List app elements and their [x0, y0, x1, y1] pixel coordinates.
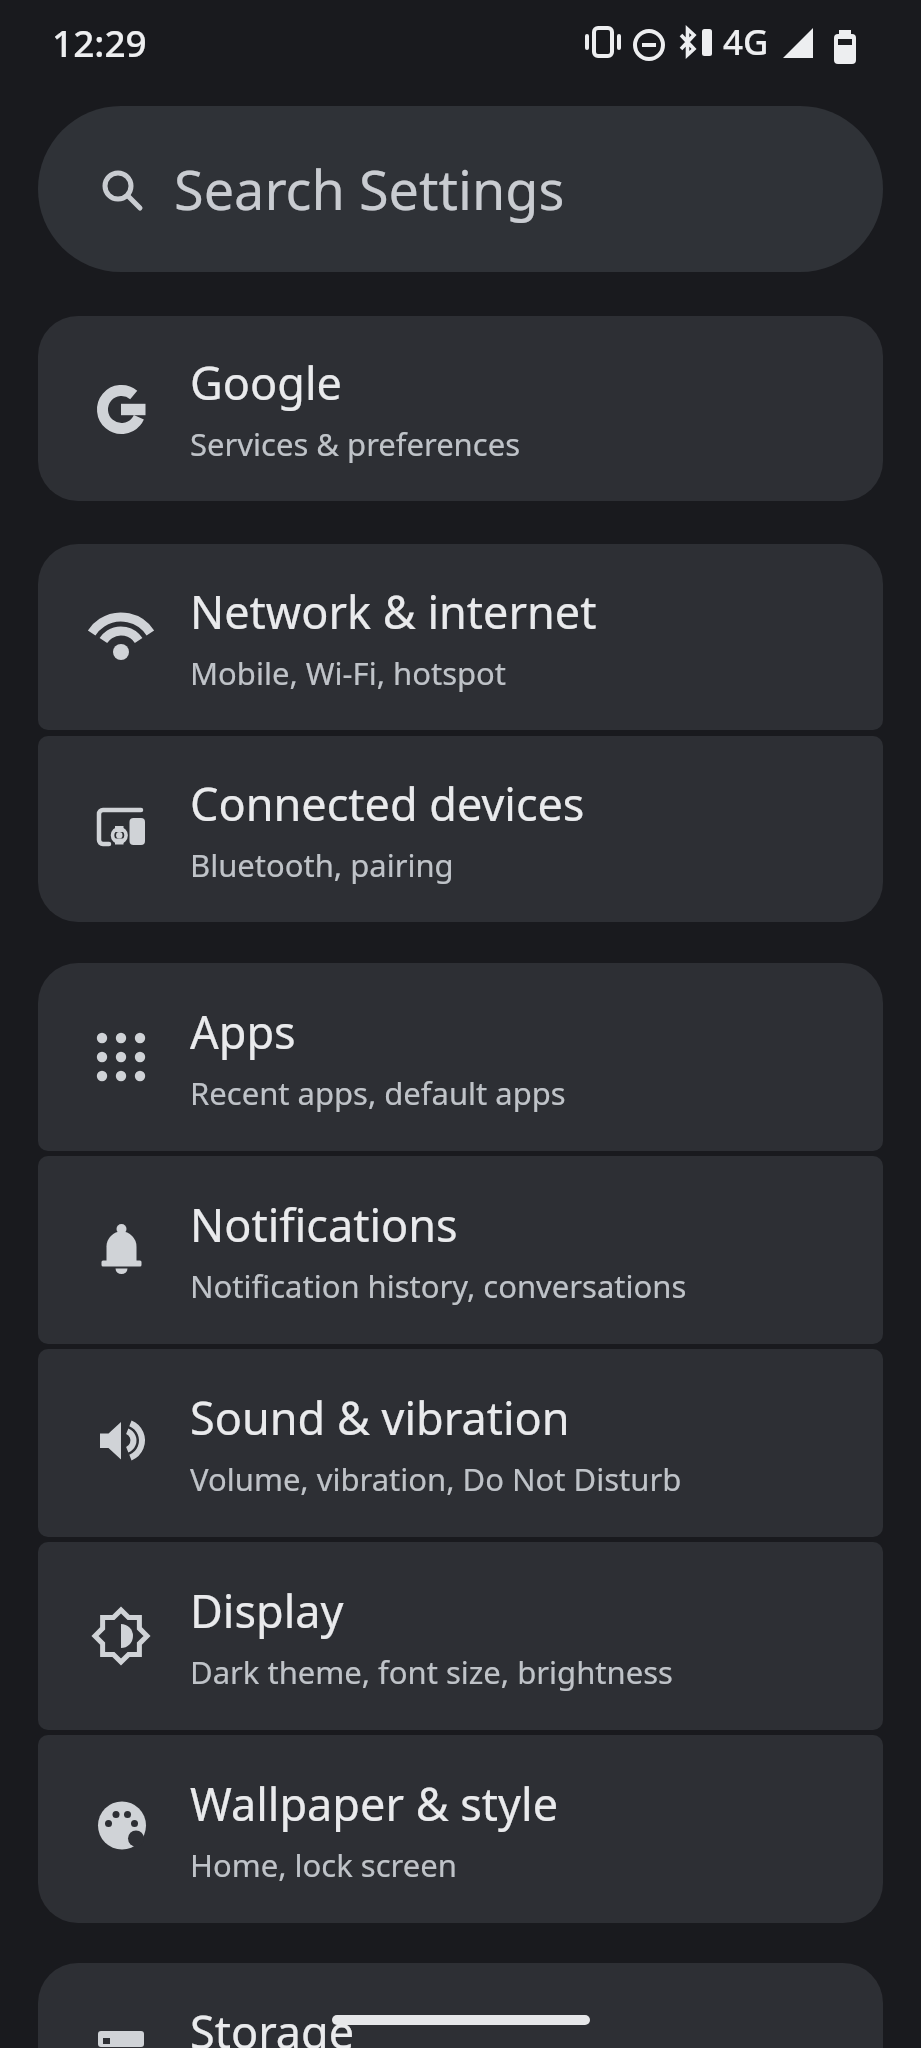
staticText: Sound & vibration: [190, 1387, 570, 1448]
staticText: Storage: [190, 2001, 355, 2048]
staticText: Home, lock screen: [190, 1844, 457, 1886]
button[interactable]: Sound & vibration: [38, 1349, 883, 1537]
staticText: Search Settings: [174, 152, 565, 226]
staticText: Apps: [190, 1001, 296, 1062]
staticText: Notifications: [190, 1194, 458, 1255]
button[interactable]: Connected devices: [38, 736, 883, 922]
staticText: Bluetooth, pairing: [190, 844, 454, 886]
staticText: 12:29: [52, 17, 147, 67]
button[interactable]: Network & internet: [38, 544, 883, 730]
staticText: Google: [190, 352, 342, 413]
button[interactable]: Wallpaper & style: [38, 1735, 883, 1923]
staticText: Network & internet: [190, 581, 597, 642]
staticText: Mobile, Wi-Fi, hotspot: [190, 652, 507, 694]
staticText: Display: [190, 1580, 344, 1641]
staticText: 4G: [723, 18, 769, 66]
button[interactable]: Storage: [38, 1963, 883, 2048]
button[interactable]: Google: [38, 316, 883, 501]
button[interactable]: Apps: [38, 963, 883, 1151]
staticText: Connected devices: [190, 773, 585, 834]
button[interactable]: Display: [38, 1542, 883, 1730]
staticText: Recent apps, default apps: [190, 1072, 566, 1114]
staticText: Wallpaper & style: [190, 1773, 559, 1834]
button[interactable]: Notifications: [38, 1156, 883, 1344]
button[interactable]: Search Settings: [38, 106, 883, 272]
staticText: Dark theme, font size, brightness: [190, 1651, 673, 1693]
staticText: Services & preferences: [190, 423, 520, 465]
staticText: Volume, vibration, Do Not Disturb: [190, 1458, 682, 1500]
staticText: Notification history, conversations: [190, 1265, 687, 1307]
